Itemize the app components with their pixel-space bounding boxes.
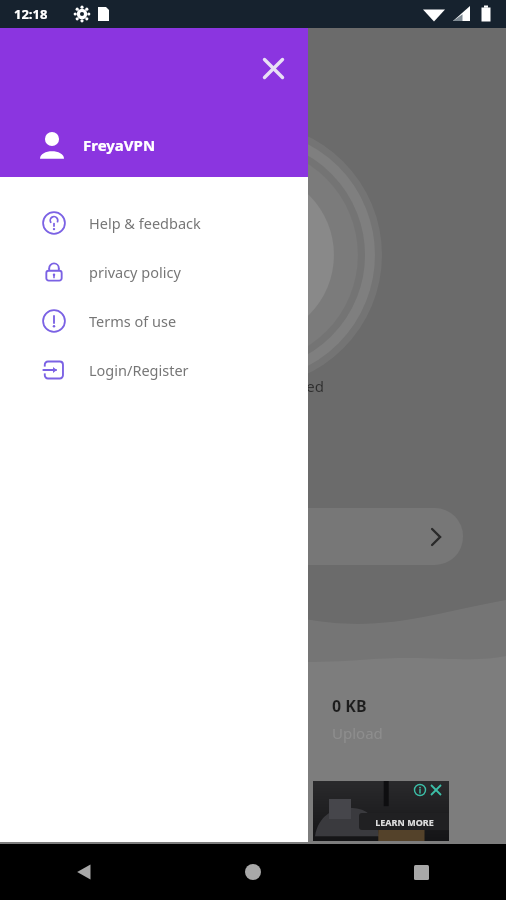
button[interactable]: Home (168, 844, 337, 900)
button[interactable]: Recent apps (337, 844, 506, 900)
staticText: Upload (332, 723, 383, 743)
button[interactable]: Close navigation drawer (253, 48, 293, 88)
staticText: Login/Register (89, 360, 189, 380)
button[interactable]: LEARN MORE (313, 781, 449, 841)
button[interactable] (24, 508, 463, 565)
button[interactable]: Back (0, 844, 168, 900)
button[interactable]: Terms of use (0, 296, 308, 345)
button[interactable]: Login/Register (0, 345, 308, 394)
staticText: privacy policy (89, 262, 181, 282)
staticText: Terms of use (89, 311, 177, 331)
button[interactable]: LEARN MORE (359, 813, 449, 830)
staticText: 0 KB (332, 695, 367, 717)
button[interactable]: privacy policy (0, 247, 308, 296)
staticText: 12:18 (14, 5, 48, 23)
staticText: LEARN MORE (375, 816, 434, 828)
button[interactable]: FreyaVPN (0, 113, 308, 177)
staticText: Help & feedback (89, 213, 201, 233)
button[interactable]: Help & feedback (0, 198, 308, 247)
staticText: Connected (248, 376, 324, 396)
staticText: FreyaVPN (83, 135, 156, 155)
